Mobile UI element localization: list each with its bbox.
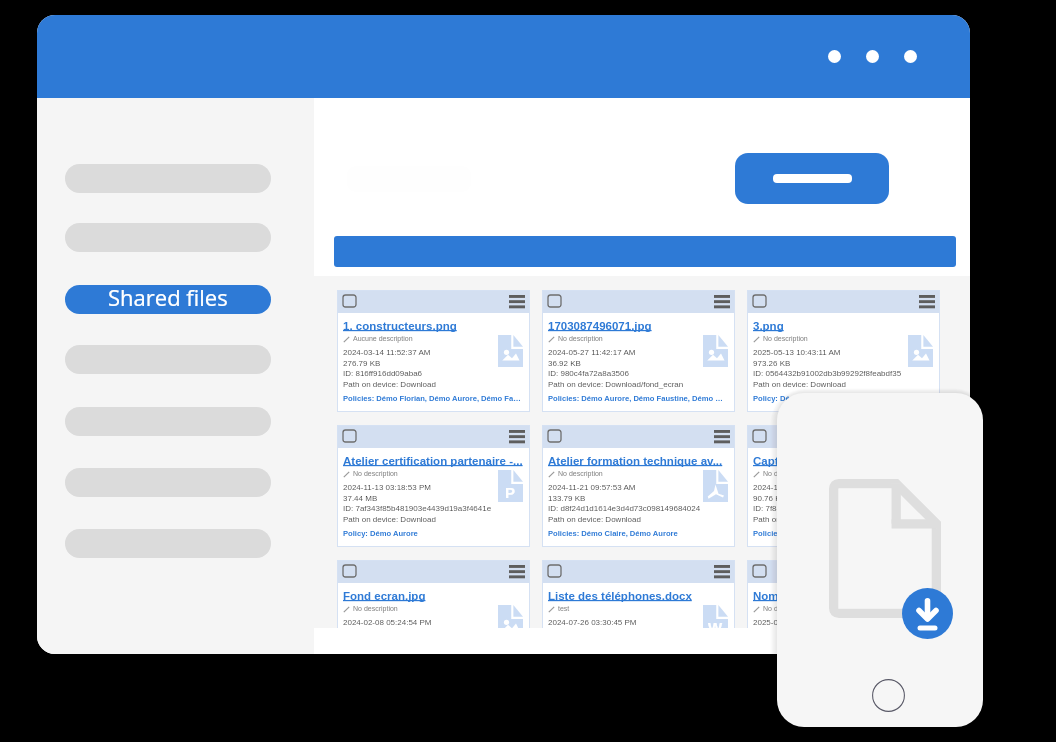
staticText: P xyxy=(505,484,516,501)
staticText: 3.png xyxy=(753,320,934,333)
staticText: Policies: Démo Claire, Démo Aurore xyxy=(753,529,933,537)
staticText: Path on device: Download xyxy=(343,380,436,389)
button[interactable]: More options xyxy=(714,430,730,444)
staticText: Policies: Démo Aurore, Démo Faustine, Dé… xyxy=(548,394,728,402)
staticText: No description xyxy=(353,605,398,613)
staticText: Nom de fichier.png xyxy=(753,590,934,603)
button[interactable]: Select file xyxy=(343,295,356,307)
button[interactable]: Select file xyxy=(548,430,561,442)
staticText: ID: 7f8a21b45cd9e3327ab xyxy=(753,504,848,513)
button[interactable]: More options xyxy=(714,295,730,309)
staticText: No description xyxy=(763,605,808,613)
button[interactable]: More options xyxy=(714,565,730,579)
staticText: 2024-07-26 03:30:45 PM xyxy=(548,618,637,627)
button[interactable]: Minimise xyxy=(828,50,841,63)
button[interactable]: More options xyxy=(919,565,935,579)
button[interactable]: Select file xyxy=(337,425,530,547)
staticText: 2024-11-21 09:57:53 AM xyxy=(548,483,636,492)
button[interactable]: Select file xyxy=(747,560,940,628)
button[interactable]: More options xyxy=(919,295,935,309)
staticText: ID: 980c4fa72a8a3506 xyxy=(548,369,629,378)
staticText: No description xyxy=(763,470,808,478)
button[interactable]: Menu item xyxy=(65,345,271,374)
button[interactable]: Select file xyxy=(343,565,356,577)
staticText: ID: 0564432b91002db3b99292f8feabdf35 xyxy=(753,369,902,378)
button[interactable]: Select file xyxy=(753,565,766,577)
staticText: Fond ecran.jpg xyxy=(343,590,524,603)
button[interactable]: Select file xyxy=(337,290,530,412)
button[interactable]: Menu item xyxy=(65,468,271,497)
staticText: Policy: Démo Aurore xyxy=(343,529,523,537)
button[interactable]: Select file xyxy=(747,425,940,547)
button[interactable]: Select file xyxy=(542,290,735,412)
staticText: ID: d8f24d1d1614e3d4d73c098149684024 xyxy=(548,504,701,513)
button[interactable]: Download xyxy=(902,588,953,639)
staticText: 2024-10-02 08:12:24 AM xyxy=(753,483,842,492)
button[interactable]: More options xyxy=(509,295,525,309)
staticText: No description xyxy=(558,470,603,478)
button[interactable]: Select file xyxy=(548,565,561,577)
staticText: 2025-05-13 10:43:11 AM xyxy=(753,348,841,357)
button[interactable]: Menu item xyxy=(65,164,271,193)
staticText: 36.92 KB xyxy=(548,359,581,368)
staticText: Path on device: Download xyxy=(753,515,846,524)
staticText: 2024-03-14 11:52:37 AM xyxy=(343,348,431,357)
staticText: No description xyxy=(558,335,603,343)
button[interactable]: Select file xyxy=(337,560,530,628)
staticText: 2025-01-17 02:11:09 PM xyxy=(753,618,841,627)
staticText: test xyxy=(558,605,570,613)
button[interactable]: Menu item xyxy=(65,407,271,436)
button[interactable]: Menu item xyxy=(65,529,271,558)
button[interactable]: Select file xyxy=(753,295,766,307)
staticText: 2024-11-13 03:18:53 PM xyxy=(343,483,431,492)
staticText: Atelier certification partenaire -... xyxy=(343,455,524,468)
staticText: Shared files xyxy=(108,285,228,311)
button[interactable]: Close xyxy=(904,50,917,63)
staticText: W xyxy=(708,619,723,628)
staticText: 276.79 KB xyxy=(343,359,381,368)
staticText: Path on device: Download/fond_ecran xyxy=(548,380,684,389)
staticText: 2024-02-08 05:24:54 PM xyxy=(343,618,432,627)
staticText: Path on device: Download xyxy=(343,515,436,524)
button[interactable]: Toolbar xyxy=(334,236,956,267)
staticText: 37.44 MB xyxy=(343,494,378,503)
button[interactable]: Select file xyxy=(343,430,356,442)
button[interactable]: Shared files xyxy=(65,285,271,314)
staticText: Aucune description xyxy=(353,335,413,343)
button[interactable]: Select file xyxy=(548,295,561,307)
button[interactable]: Select file xyxy=(747,290,940,412)
button[interactable]: Maximise xyxy=(866,50,879,63)
button[interactable]: Primary action xyxy=(735,153,889,204)
button[interactable]: Menu item xyxy=(65,223,271,252)
staticText: ID: 7af343f85b481903e4439d19a3f4641e xyxy=(343,504,492,513)
button[interactable]: Select file xyxy=(753,430,766,442)
staticText: 2024-05-27 11:42:17 AM xyxy=(548,348,636,357)
staticText: Liste des téléphones.docx xyxy=(548,590,729,603)
staticText: Atelier formation technique av... xyxy=(548,455,729,468)
staticText: No description xyxy=(763,335,808,343)
staticText: Policy: Démo Aurore xyxy=(753,394,933,402)
button[interactable]: Select file xyxy=(542,425,735,547)
staticText: ID: 816ff916dd09aba6 xyxy=(343,369,423,378)
staticText: 1703087496071.jpg xyxy=(548,320,729,333)
button[interactable]: More options xyxy=(509,430,525,444)
staticText: Policies: Démo Florian, Démo Aurore, Dém… xyxy=(343,394,523,402)
staticText: 1. constructeurs.png xyxy=(343,320,524,333)
button[interactable]: Home xyxy=(872,679,905,712)
staticText: 90.76 KB xyxy=(753,494,786,503)
button[interactable]: More options xyxy=(509,565,525,579)
staticText: 133.79 KB xyxy=(548,494,586,503)
staticText: No description xyxy=(353,470,398,478)
staticText: Path on device: Download xyxy=(753,380,846,389)
staticText: Policies: Démo Claire, Démo Aurore xyxy=(548,529,728,537)
staticText: Capture d'écran.png xyxy=(753,455,934,468)
button[interactable]: Select file xyxy=(542,560,735,628)
staticText: 973.26 KB xyxy=(753,359,791,368)
staticText: Path on device: Download xyxy=(548,515,641,524)
